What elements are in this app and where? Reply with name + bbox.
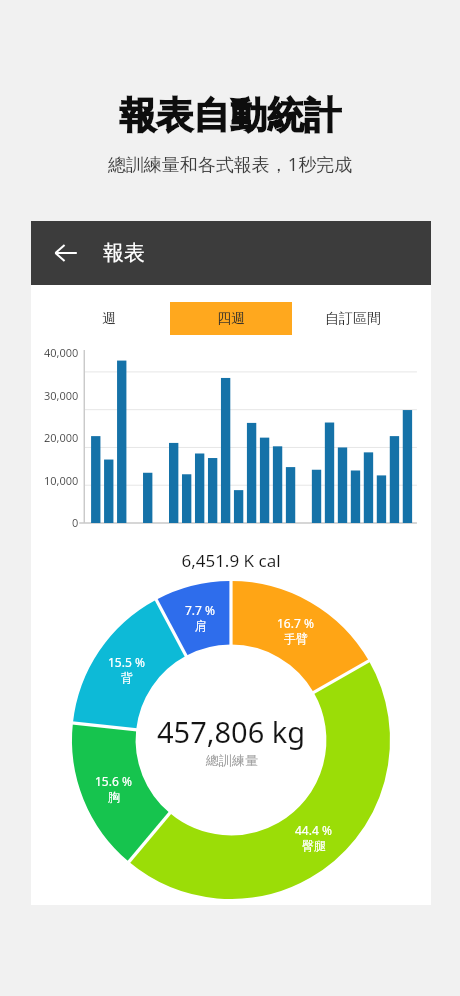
staticText: 20,000 [44, 430, 79, 445]
staticText: 手臂 [284, 631, 308, 646]
staticText: 臀腿 [302, 838, 326, 853]
button[interactable]: Back [43, 230, 89, 276]
staticText: 背 [121, 670, 133, 685]
staticText: 報表自動統計 [0, 92, 460, 139]
staticText: 週 [102, 310, 116, 328]
staticText: 四週 [217, 310, 245, 328]
staticText: 報表 [103, 240, 145, 266]
staticText: 44.4 % [295, 822, 332, 838]
staticText: 15.6 % [95, 773, 132, 789]
staticText: 6,451.9 K cal [31, 549, 431, 572]
staticText: 457,806 kg [157, 712, 306, 751]
staticText: 自訂區間 [325, 310, 381, 328]
staticText: 16.7 % [277, 615, 314, 631]
staticText: 總訓練量和各式報表，1秒完成 [0, 152, 460, 177]
staticText: 30,000 [44, 388, 79, 403]
staticText: 15.5 % [108, 654, 145, 670]
staticText: 0 [72, 515, 79, 530]
button[interactable]: 週 [48, 302, 170, 335]
staticText: 10,000 [44, 473, 79, 488]
staticText: 7.7 % [185, 602, 216, 618]
staticText: 肩 [195, 618, 207, 633]
staticText: 胸 [108, 789, 120, 804]
button[interactable]: 四週 [170, 302, 292, 335]
staticText: 總訓練量 [206, 752, 258, 768]
staticText: 40,000 [44, 345, 79, 360]
button[interactable]: 自訂區間 [292, 302, 414, 335]
